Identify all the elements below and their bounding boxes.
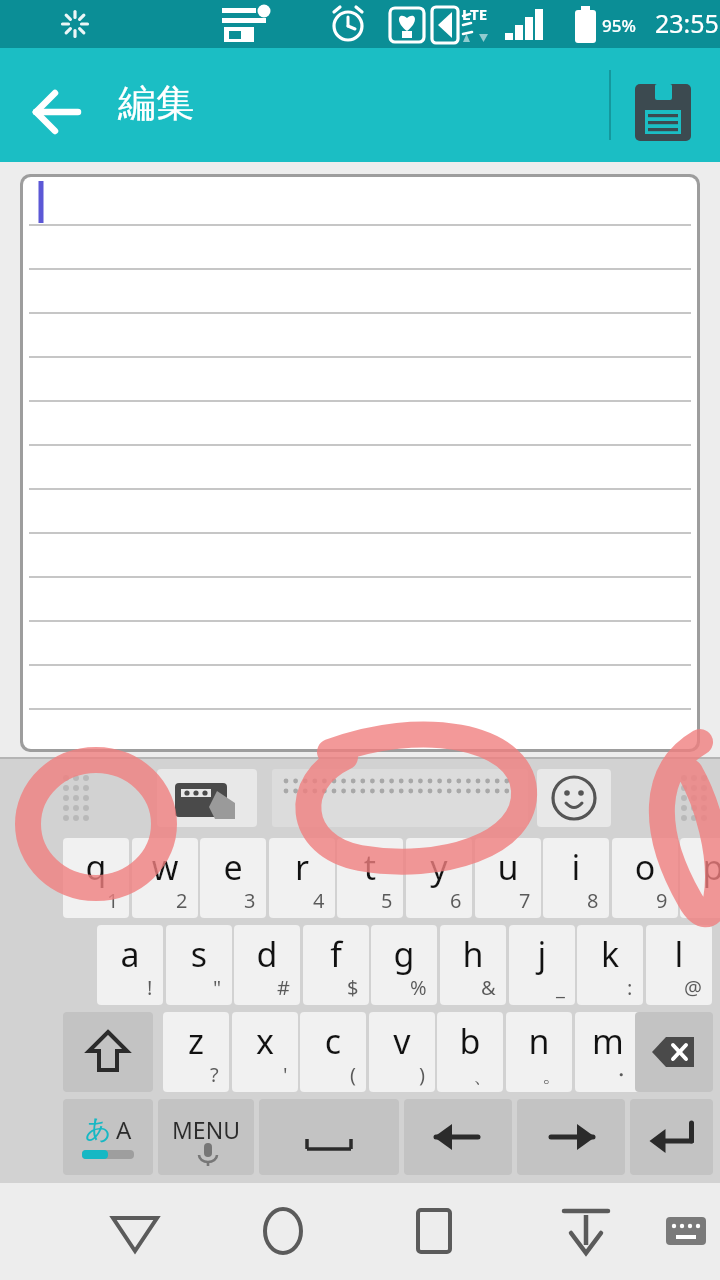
button[interactable]: m bbox=[575, 1012, 641, 1092]
button[interactable]: Hide keyboard bbox=[544, 1189, 628, 1273]
staticText: v bbox=[369, 1018, 435, 1064]
button[interactable]: l bbox=[646, 925, 712, 1005]
button[interactable]: Right bbox=[517, 1099, 625, 1175]
staticText: m bbox=[575, 1018, 641, 1064]
button[interactable]: Space bbox=[259, 1099, 399, 1175]
staticText: 2 bbox=[176, 887, 188, 914]
staticText: g bbox=[371, 931, 437, 977]
button[interactable]: Enter bbox=[630, 1099, 713, 1175]
button[interactable]: Back bbox=[20, 76, 92, 148]
button[interactable]: q bbox=[63, 838, 129, 918]
button[interactable]: u bbox=[475, 838, 541, 918]
button[interactable]: v bbox=[369, 1012, 435, 1092]
staticText: h bbox=[440, 931, 506, 977]
button[interactable]: Menu bbox=[158, 1099, 254, 1175]
button[interactable]: w bbox=[132, 838, 198, 918]
button[interactable]: b bbox=[437, 1012, 503, 1092]
staticText: r bbox=[269, 844, 335, 890]
staticText: 6 bbox=[450, 887, 462, 914]
staticText: b bbox=[437, 1018, 503, 1064]
button[interactable]: r bbox=[269, 838, 335, 918]
staticText: " bbox=[213, 974, 222, 1001]
staticText: t bbox=[337, 844, 403, 890]
staticText: & bbox=[481, 974, 496, 1001]
staticText: 、 bbox=[473, 1063, 493, 1088]
staticText: ' bbox=[283, 1061, 288, 1088]
staticText: $ bbox=[347, 974, 359, 1001]
staticText: # bbox=[277, 974, 290, 1001]
staticText: d bbox=[234, 931, 300, 977]
button[interactable]: e bbox=[200, 838, 266, 918]
staticText: y bbox=[406, 844, 472, 890]
button[interactable]: Backspace bbox=[635, 1012, 713, 1092]
staticText: p bbox=[680, 844, 720, 890]
staticText: q bbox=[63, 844, 129, 890]
staticText: e bbox=[200, 844, 266, 890]
staticText: ) bbox=[419, 1061, 425, 1088]
button[interactable]: Back bbox=[93, 1189, 177, 1273]
button[interactable]: i bbox=[543, 838, 609, 918]
button[interactable]: Save bbox=[626, 76, 700, 150]
staticText: z bbox=[163, 1018, 229, 1064]
staticText: 95% bbox=[602, 14, 636, 37]
button[interactable]: Resize keyboard right bbox=[672, 767, 716, 829]
staticText: 4 bbox=[313, 887, 325, 914]
staticText: 9 bbox=[656, 887, 668, 914]
button[interactable]: z bbox=[163, 1012, 229, 1092]
button[interactable]: Switch keyboard bbox=[644, 1189, 720, 1273]
staticText: 8 bbox=[587, 887, 599, 914]
button[interactable]: Recents bbox=[392, 1189, 476, 1273]
button[interactable]: Input method bbox=[157, 769, 257, 827]
staticText: あ bbox=[85, 1113, 112, 1146]
button[interactable]: a bbox=[97, 925, 163, 1005]
button[interactable]: x bbox=[232, 1012, 298, 1092]
staticText: ( bbox=[350, 1061, 356, 1088]
button[interactable]: k bbox=[577, 925, 643, 1005]
button[interactable] bbox=[20, 174, 700, 752]
staticText: A bbox=[116, 1113, 132, 1146]
button[interactable]: y bbox=[406, 838, 472, 918]
staticText: 。 bbox=[542, 1063, 562, 1088]
button[interactable]: f bbox=[303, 925, 369, 1005]
staticText: o bbox=[612, 844, 678, 890]
staticText: ・ bbox=[611, 1063, 631, 1088]
staticText: s bbox=[166, 931, 232, 977]
button[interactable]: o bbox=[612, 838, 678, 918]
button[interactable]: Suggestions bbox=[272, 769, 528, 827]
staticText: 5 bbox=[381, 887, 393, 914]
staticText: % bbox=[410, 974, 427, 1001]
button[interactable]: Left bbox=[404, 1099, 512, 1175]
staticText: 3 bbox=[244, 887, 256, 914]
staticText: f bbox=[303, 931, 369, 977]
staticText: ! bbox=[147, 974, 153, 1001]
staticText: a bbox=[97, 931, 163, 977]
button[interactable]: d bbox=[234, 925, 300, 1005]
staticText: c bbox=[300, 1018, 366, 1064]
staticText: _ bbox=[556, 974, 565, 1001]
staticText: x bbox=[232, 1018, 298, 1064]
staticText: @ bbox=[684, 974, 702, 1001]
button[interactable]: Home bbox=[241, 1189, 325, 1273]
staticText: 7 bbox=[519, 887, 531, 914]
staticText: u bbox=[475, 844, 541, 890]
button[interactable]: s bbox=[166, 925, 232, 1005]
button[interactable]: c bbox=[300, 1012, 366, 1092]
staticText: w bbox=[132, 844, 198, 890]
button[interactable]: p bbox=[680, 838, 720, 918]
button[interactable]: j bbox=[509, 925, 575, 1005]
staticText: i bbox=[543, 844, 609, 890]
button[interactable]: Emoji bbox=[537, 769, 611, 827]
button[interactable]: t bbox=[337, 838, 403, 918]
staticText: LTE bbox=[462, 4, 488, 24]
staticText: 23:55 bbox=[655, 6, 719, 40]
button[interactable]: h bbox=[440, 925, 506, 1005]
staticText: 編集 bbox=[118, 79, 194, 127]
button[interactable]: n bbox=[506, 1012, 572, 1092]
staticText: MENU bbox=[172, 1114, 240, 1145]
button[interactable]: Resize keyboard bbox=[18, 767, 134, 829]
staticText: ? bbox=[210, 1061, 219, 1088]
button[interactable]: Shift bbox=[63, 1012, 153, 1092]
staticText: k bbox=[577, 931, 643, 977]
button[interactable]: Language bbox=[63, 1099, 153, 1175]
button[interactable]: g bbox=[371, 925, 437, 1005]
